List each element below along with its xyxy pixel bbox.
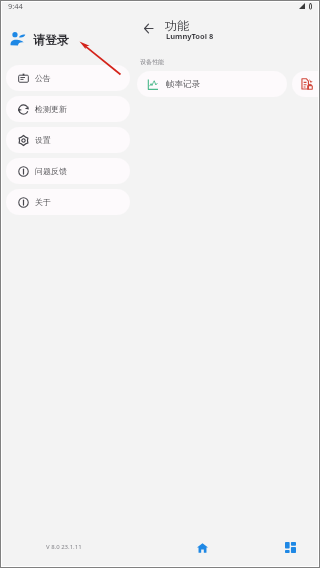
staticText: 请登录	[33, 32, 69, 47]
button[interactable]: 设置	[6, 127, 130, 153]
button[interactable]: 关于	[6, 189, 130, 215]
staticText: 问题反馈	[35, 166, 67, 176]
staticText: 功能	[165, 18, 189, 33]
staticText: 设备性能	[140, 58, 164, 66]
button[interactable]: 问题反馈	[6, 158, 130, 184]
staticText: 9:44	[8, 1, 23, 11]
staticText: 帧率记录	[166, 79, 200, 90]
button[interactable]: 公告	[6, 65, 130, 91]
staticText: 设置	[35, 135, 51, 145]
button[interactable]: Back	[137, 17, 159, 39]
button[interactable]: Home	[186, 531, 219, 564]
button[interactable]: 检测更新	[6, 96, 130, 122]
staticText: 公告	[35, 73, 51, 83]
button[interactable]: 帧率记录	[137, 71, 287, 97]
button[interactable]: Apps	[274, 531, 307, 564]
staticText: V 8.0 23.1.11	[46, 543, 82, 551]
button[interactable]: Report	[292, 71, 320, 97]
staticText: 检测更新	[35, 104, 67, 114]
button[interactable]: 请登录	[10, 27, 69, 51]
staticText: 关于	[35, 197, 51, 207]
staticText: LumnyTool 8	[166, 31, 214, 41]
